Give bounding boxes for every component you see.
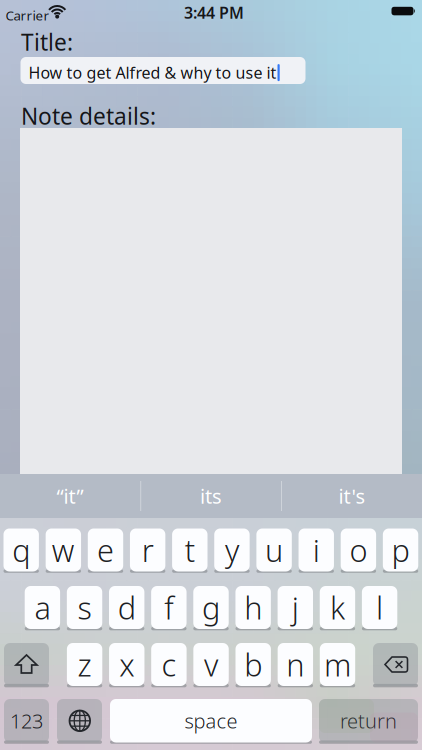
staticText: z <box>78 644 92 685</box>
staticText: m <box>324 644 351 685</box>
staticText: v <box>204 644 218 685</box>
button[interactable] <box>57 699 102 742</box>
staticText: l <box>376 587 383 628</box>
staticText: Note details: <box>21 101 156 131</box>
button[interactable]: 123 <box>4 699 49 742</box>
button[interactable]: its <box>141 474 281 518</box>
button[interactable]: c <box>151 643 187 686</box>
staticText: d <box>118 587 136 628</box>
button[interactable]: d <box>109 586 144 629</box>
staticText: Carrier <box>5 6 49 24</box>
staticText: return <box>340 707 397 734</box>
button[interactable]: n <box>278 643 313 686</box>
button[interactable]: h <box>235 586 271 629</box>
staticText: e <box>97 530 114 570</box>
staticText: p <box>391 530 409 570</box>
staticText: its <box>200 483 222 509</box>
button[interactable]: p <box>383 528 418 571</box>
button[interactable]: j <box>278 586 313 629</box>
button[interactable]: l <box>362 586 397 629</box>
staticText: j <box>292 587 299 628</box>
staticText: w <box>52 530 75 570</box>
button[interactable]: return <box>319 699 418 742</box>
button[interactable]: k <box>320 586 355 629</box>
button[interactable]: t <box>172 528 207 571</box>
button[interactable]: m <box>320 643 355 686</box>
staticText: “it” <box>56 483 83 509</box>
button[interactable]: v <box>193 643 229 686</box>
staticText: n <box>286 644 304 685</box>
staticText: s <box>77 587 91 628</box>
button[interactable]: f <box>151 586 186 629</box>
button[interactable]: u <box>256 528 292 571</box>
button[interactable]: w <box>46 528 81 571</box>
button[interactable]: it's <box>282 474 422 518</box>
button[interactable]: s <box>67 586 102 629</box>
button[interactable]: o <box>341 528 376 571</box>
staticText: u <box>265 530 283 570</box>
button[interactable] <box>373 643 418 686</box>
button[interactable]: “it” <box>0 474 140 518</box>
staticText: Title: <box>21 27 73 57</box>
staticText: t <box>185 530 195 570</box>
staticText: r <box>142 530 154 570</box>
staticText: 3:44 PM <box>184 2 244 23</box>
button[interactable] <box>4 643 49 686</box>
staticText: space <box>184 707 237 734</box>
staticText: c <box>161 644 176 685</box>
button[interactable]: space <box>110 699 312 742</box>
staticText: x <box>119 644 134 685</box>
staticText: g <box>202 587 220 628</box>
staticText: q <box>12 530 30 570</box>
button[interactable]: e <box>88 528 123 571</box>
button[interactable]: g <box>193 586 229 629</box>
button[interactable]: y <box>214 528 250 571</box>
button[interactable]: q <box>3 528 39 571</box>
staticText: i <box>313 530 320 570</box>
staticText: o <box>349 530 367 570</box>
staticText: y <box>225 530 239 570</box>
button[interactable]: How to get Alfred & why to use it <box>20 57 305 84</box>
staticText: How to get Alfred & why to use it <box>28 62 276 83</box>
button[interactable]: b <box>235 643 271 686</box>
staticText: k <box>330 587 345 628</box>
button[interactable]: z <box>67 643 102 686</box>
staticText: f <box>164 587 173 628</box>
staticText: h <box>244 587 262 628</box>
staticText: b <box>244 644 262 685</box>
button[interactable]: i <box>299 528 334 571</box>
staticText: a <box>34 587 50 628</box>
button[interactable]: x <box>109 643 144 686</box>
staticText: it's <box>338 483 365 509</box>
button[interactable]: a <box>25 586 60 629</box>
staticText: 123 <box>10 707 43 734</box>
button[interactable]: r <box>130 528 165 571</box>
